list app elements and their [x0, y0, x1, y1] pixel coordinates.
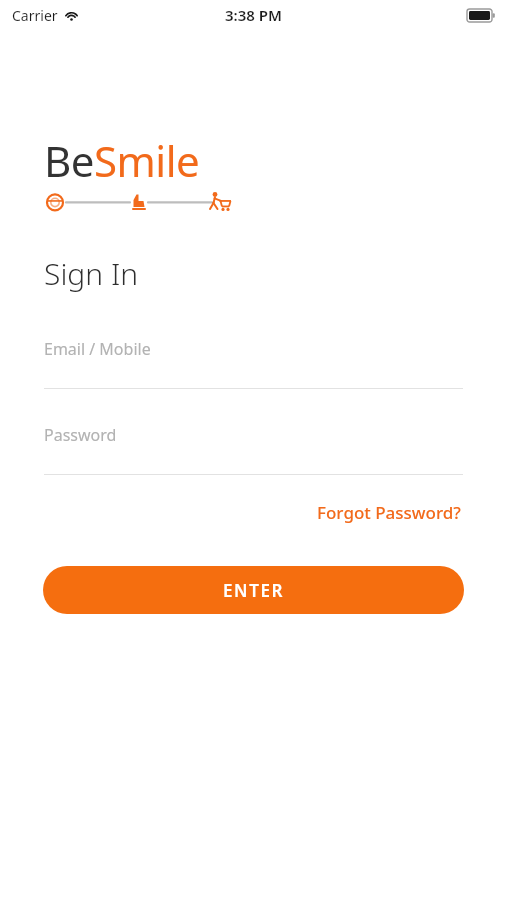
staticText: Email / Mobile: [44, 338, 151, 360]
staticText: Forgot Password?: [317, 501, 461, 524]
button[interactable]: Password: [44, 424, 463, 474]
staticText: Carrier: [12, 6, 58, 25]
staticText: Sign In: [44, 253, 139, 294]
button[interactable]: ENTER: [43, 566, 464, 614]
button[interactable]: Forgot Password?: [315, 497, 463, 528]
button[interactable]: Email / Mobile: [44, 338, 463, 388]
staticText: BeSmile: [44, 132, 200, 189]
staticText: ENTER: [223, 579, 285, 602]
staticText: 3:38 PM: [225, 5, 282, 25]
staticText: Password: [44, 424, 117, 446]
